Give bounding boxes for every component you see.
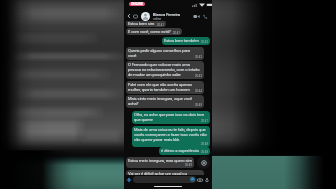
staticText: 20:45 bbox=[195, 103, 202, 106]
staticText: 20:50 bbox=[195, 178, 202, 181]
button[interactable]: Estou bem também bbox=[162, 37, 210, 45]
staticText: Vai ser é difícil achar um casal ou uma bbox=[128, 171, 202, 181]
staticText: Falei com ele que não aceita apenas mulh… bbox=[128, 82, 202, 92]
button[interactable]: Emoji bbox=[133, 176, 196, 183]
button[interactable]: Voice message bbox=[204, 177, 210, 183]
button[interactable]: Mais de uma coisa eu te falo, depois que… bbox=[132, 126, 210, 147]
button[interactable]: Estou meio insegura, mas quero sim bbox=[126, 157, 194, 168]
button[interactable]: Mais sinto meio insegura, oque você acha… bbox=[126, 95, 204, 108]
staticText: Estou meio insegura, mas quero sim bbox=[128, 158, 192, 163]
button[interactable]: Attach bbox=[126, 177, 132, 183]
staticText: 20:43 bbox=[195, 74, 202, 77]
staticText: Mais sinto meio insegura, oque você acha… bbox=[128, 96, 202, 106]
button[interactable]: ONLINE bbox=[131, 2, 143, 6]
staticText: 20:42 bbox=[201, 40, 208, 43]
staticText: Mais de uma coisa eu te falo, depois que… bbox=[134, 127, 208, 142]
button[interactable]: Olha, eu acho que para isso os dois tem … bbox=[132, 111, 210, 124]
button[interactable]: Chats bbox=[133, 14, 138, 19]
button[interactable]: Estou bem sim bbox=[126, 21, 166, 27]
staticText: 20:42 bbox=[195, 55, 202, 58]
staticText: Queria pedir alguns conselhos para você bbox=[128, 48, 202, 58]
button[interactable]: O Fernando quer colocar mais uma pessoa … bbox=[126, 61, 204, 79]
staticText: E com você, como está? bbox=[128, 29, 180, 34]
button[interactable]: Back bbox=[126, 13, 132, 19]
staticText: Estou bem sim bbox=[128, 21, 164, 26]
staticText: 20:48 bbox=[201, 142, 208, 145]
staticText: online bbox=[153, 17, 162, 21]
staticText: 20:41 bbox=[173, 31, 180, 34]
staticText: 20:48 bbox=[201, 150, 208, 153]
button[interactable]: Falei com ele que não aceita apenas mulh… bbox=[126, 81, 204, 94]
staticText: é ótimo a experiência bbox=[161, 148, 208, 153]
staticText: Olha, eu acho que para isso os dois tem … bbox=[134, 112, 208, 122]
staticText: Bianca Ferreira bbox=[153, 12, 180, 17]
staticText: Estou bem também bbox=[164, 38, 208, 43]
staticText: ONLINE bbox=[131, 2, 143, 6]
staticText: 20:41 bbox=[157, 23, 164, 26]
button[interactable]: Video call bbox=[193, 13, 200, 20]
button[interactable]: Vai ser é difícil achar um casal ou uma bbox=[126, 170, 204, 183]
button[interactable]: Camera bbox=[197, 156, 210, 169]
staticText: 20:44 bbox=[195, 89, 202, 92]
button[interactable]: é ótimo a experiência bbox=[159, 147, 210, 155]
staticText: 20:47 bbox=[201, 119, 208, 122]
button[interactable]: Queria pedir alguns conselhos para você bbox=[126, 47, 204, 60]
staticText: O Fernando quer colocar mais uma pessoa … bbox=[128, 62, 202, 77]
button[interactable]: Emoji bbox=[190, 177, 195, 182]
button[interactable]: E com você, como está? bbox=[126, 28, 182, 35]
staticText: 20:49 bbox=[185, 163, 192, 166]
button[interactable]: Call bbox=[202, 13, 209, 20]
button[interactable]: Camera bbox=[197, 177, 203, 183]
